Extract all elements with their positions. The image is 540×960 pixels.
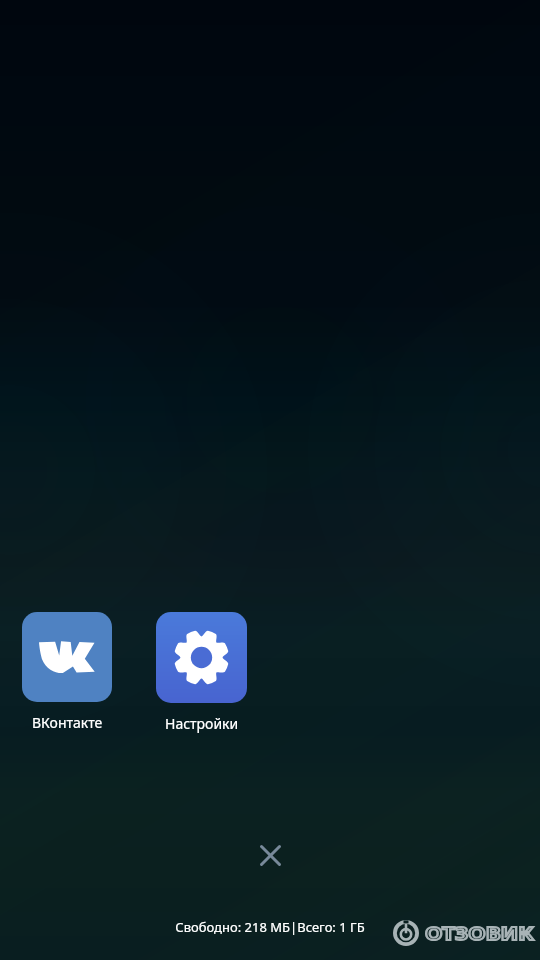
staticText: Свободно: 218 МБ|Всего: 1 ГБ (0, 918, 540, 936)
staticText: Настройки (165, 714, 239, 733)
button[interactable]: ВКонтакте (22, 612, 112, 732)
button[interactable]: Close all apps (246, 831, 294, 879)
staticText: ВКонтакте (32, 713, 103, 732)
button[interactable]: Настройки (156, 612, 247, 733)
staticText: ОТЗОВИК (425, 921, 534, 945)
